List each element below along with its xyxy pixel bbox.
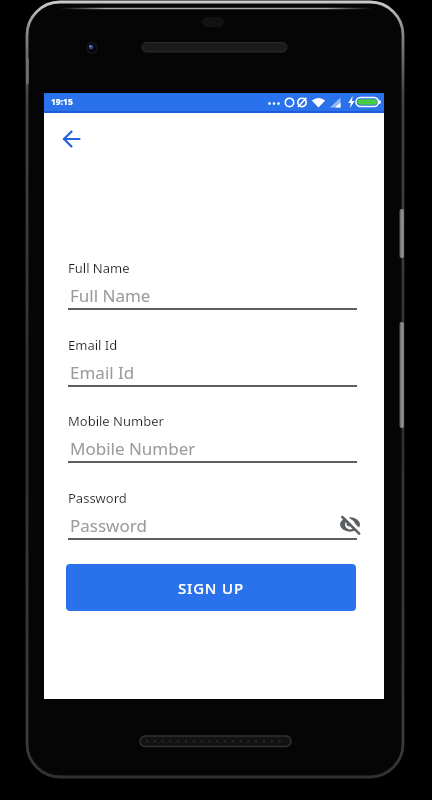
staticText: Email Id (68, 336, 118, 354)
staticText: Mobile Number (70, 437, 196, 460)
button[interactable]: SIGN UP (66, 564, 356, 611)
button[interactable] (67, 508, 356, 540)
staticText: 19:15 (51, 96, 73, 108)
staticText: Password (68, 489, 127, 507)
button[interactable] (51, 119, 91, 159)
staticText: Mobile Number (68, 412, 164, 430)
button[interactable] (67, 355, 356, 387)
button[interactable] (332, 506, 369, 543)
staticText: Email Id (70, 361, 135, 384)
staticText: Full Name (70, 284, 151, 307)
button[interactable] (67, 278, 356, 310)
staticText: Full Name (68, 259, 130, 277)
staticText: SIGN UP (178, 578, 244, 598)
staticText: Password (70, 514, 147, 537)
button[interactable] (67, 431, 356, 463)
